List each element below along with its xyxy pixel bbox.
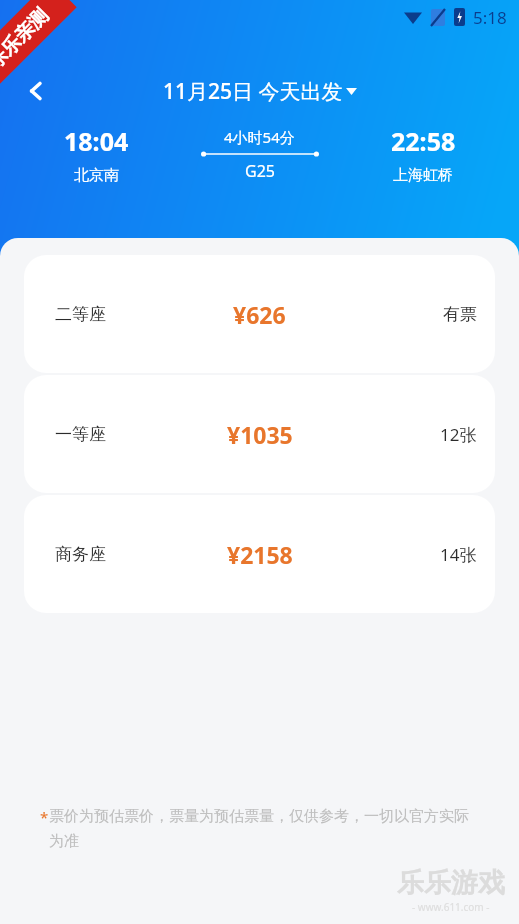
button[interactable]: 二等座 [24, 255, 495, 373]
staticText: 一等座 [55, 424, 106, 445]
button[interactable]: 11月25日 今天出发 [163, 77, 357, 106]
button[interactable]: Back [14, 69, 58, 113]
staticText: G25 [245, 160, 275, 182]
staticText: 商务座 [55, 544, 106, 565]
staticText: 14张 [440, 543, 477, 566]
staticText: 上海虹桥 [393, 166, 453, 185]
staticText: 18:04 [64, 124, 129, 158]
staticText: 22:58 [391, 124, 456, 158]
staticText: 北京南 [74, 166, 119, 185]
staticText: 乐乐亲测 [0, 4, 53, 74]
staticText: 有票 [443, 304, 477, 325]
staticText: 二等座 [55, 304, 106, 325]
staticText: 4小时54分 [224, 127, 295, 147]
staticText: 12张 [440, 423, 477, 446]
staticText: 乐乐游戏 [397, 866, 505, 900]
button[interactable]: 一等座 [24, 375, 495, 493]
staticText: ¥1035 [227, 419, 293, 450]
staticText: ¥2158 [227, 539, 293, 570]
staticText: 票价为预估票价，票量为预估票量，仅供参考，一切以官方实际为准 [49, 807, 483, 850]
button[interactable]: 商务座 [24, 495, 495, 613]
staticText: 5:18 [473, 6, 507, 29]
staticText: 11月25日 今天出发 [163, 77, 343, 106]
staticText: * [40, 807, 49, 827]
staticText: ¥626 [233, 299, 286, 330]
staticText: - www.611.com - [412, 900, 490, 914]
